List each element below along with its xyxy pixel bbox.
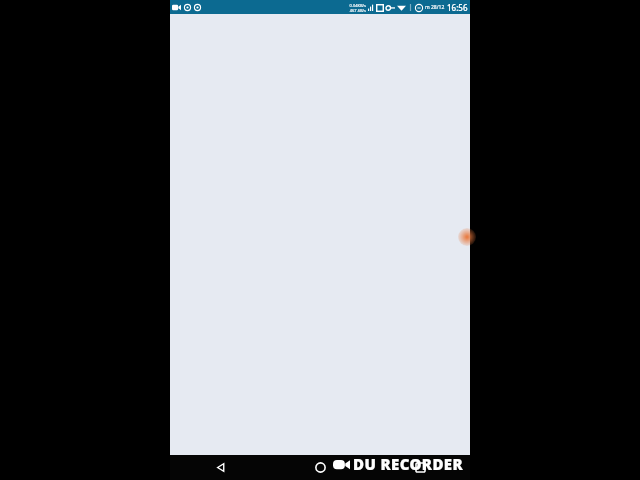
staticText: 467.6B/s [349,8,366,13]
staticText: m 28/12 [425,4,445,11]
button[interactable]: Back [170,455,270,480]
staticText: 0.04KB/s [349,3,366,8]
staticText: 16:56 [447,2,468,13]
button[interactable]: Recorder floating button [458,228,476,246]
button[interactable]: Recent apps [370,455,470,480]
staticText: DU RECORDER [353,454,464,474]
button[interactable]: Home [270,455,370,480]
